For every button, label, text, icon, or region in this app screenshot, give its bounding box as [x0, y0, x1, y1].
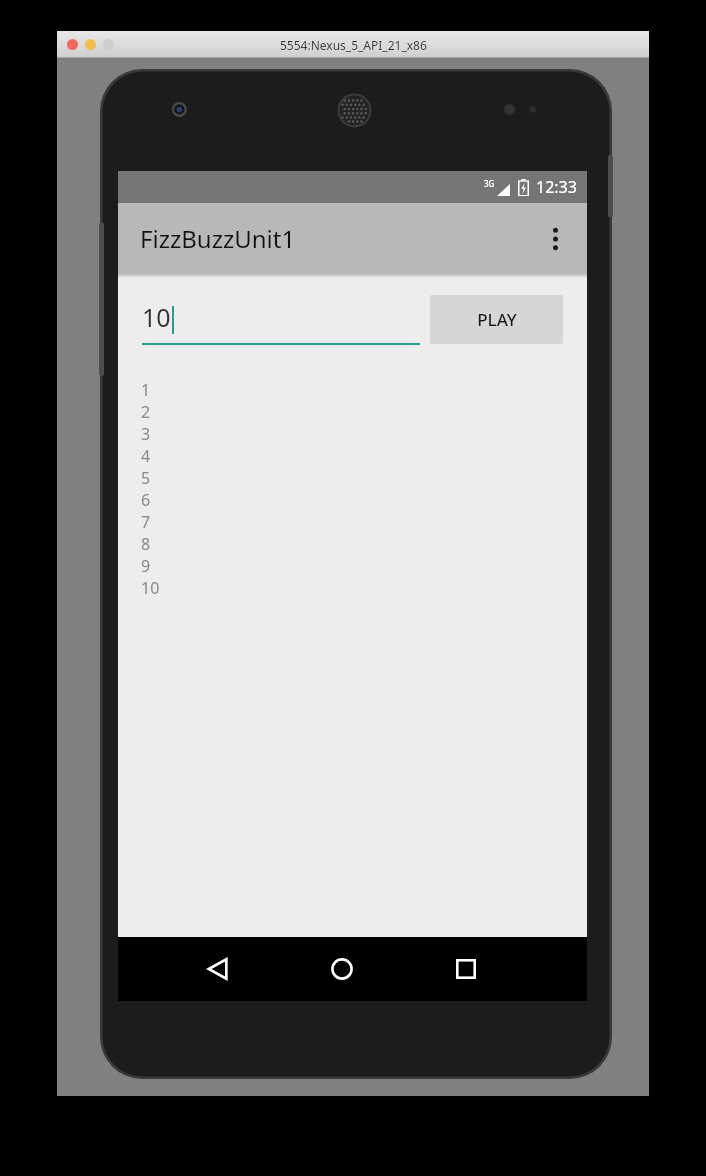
button[interactable]: 10	[142, 290, 420, 345]
staticText: 6	[141, 489, 151, 511]
button[interactable]: Back	[180, 937, 256, 1001]
staticText: 5	[141, 467, 151, 489]
button[interactable]: PLAY	[430, 295, 563, 344]
button[interactable]: Recent apps	[428, 937, 504, 1001]
staticText: 12:33	[536, 176, 577, 198]
staticText: 9	[141, 555, 151, 577]
staticText: 4	[141, 445, 151, 467]
staticText: 3	[141, 423, 151, 445]
staticText: 10	[142, 300, 171, 334]
button[interactable]: More options	[533, 217, 577, 261]
staticText: 10	[141, 577, 160, 599]
staticText: 7	[141, 511, 151, 533]
button[interactable]: Home	[304, 937, 380, 1001]
staticText: FizzBuzzUnit1	[140, 222, 296, 255]
staticText: 5554:Nexus_5_API_21_x86	[280, 37, 427, 53]
staticText: 1	[141, 379, 151, 401]
staticText: 8	[141, 533, 151, 555]
staticText: 2	[141, 401, 151, 423]
staticText: PLAY	[477, 308, 517, 331]
staticText: 3G	[484, 178, 495, 189]
